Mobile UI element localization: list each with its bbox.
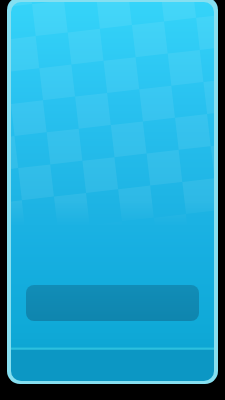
- button[interactable]: Action: [26, 285, 199, 321]
